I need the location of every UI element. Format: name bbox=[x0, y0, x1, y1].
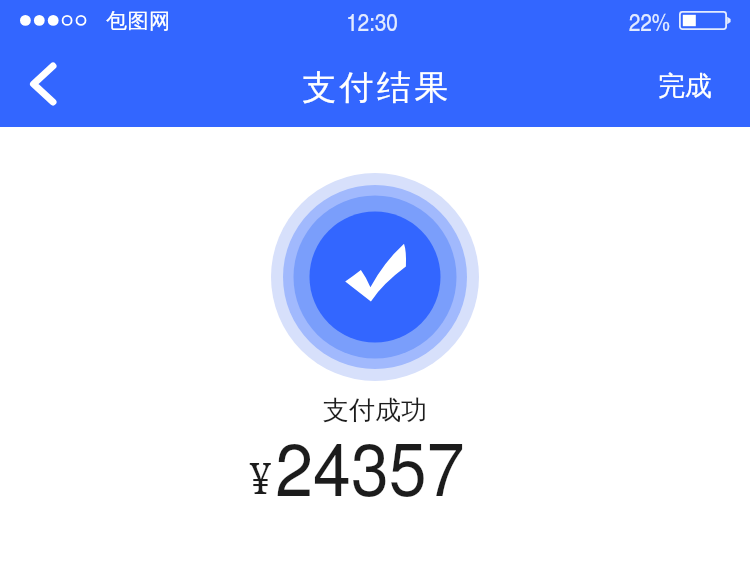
staticText: 完成 bbox=[658, 69, 712, 103]
staticText: 22% bbox=[629, 4, 671, 38]
staticText: 支付结果 bbox=[2, 66, 750, 109]
button[interactable]: 完成 bbox=[634, 53, 750, 119]
button[interactable]: Back bbox=[0, 45, 86, 127]
staticText: 24357 bbox=[275, 411, 465, 517]
other: Battery 22 percent bbox=[679, 11, 735, 33]
staticText: ¥ bbox=[249, 447, 271, 507]
staticText: 包图网 bbox=[106, 8, 171, 34]
staticText: 支付成功 bbox=[0, 394, 750, 427]
staticText: 12:30 bbox=[0, 4, 747, 38]
